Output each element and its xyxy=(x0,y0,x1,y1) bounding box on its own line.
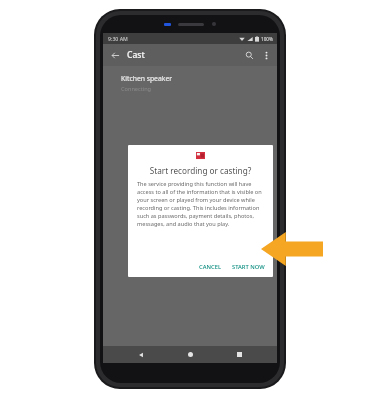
staticText: The service providing this function will… xyxy=(137,180,264,228)
staticText: 9:30 AM xyxy=(108,35,128,42)
staticText: Connecting xyxy=(121,85,152,93)
button[interactable]: START NOW xyxy=(228,260,269,274)
staticText: CANCEL xyxy=(199,263,221,271)
staticText: Kitchen speaker xyxy=(121,74,173,83)
staticText: Cast xyxy=(127,49,145,61)
staticText: START NOW xyxy=(232,263,265,271)
button[interactable]: Home xyxy=(179,347,201,362)
button[interactable]: CANCEL xyxy=(195,260,225,274)
button[interactable]: Search xyxy=(241,47,257,63)
button[interactable]: More options xyxy=(258,47,274,63)
button[interactable]: Back xyxy=(130,347,152,362)
staticText: Start recording or casting? xyxy=(137,165,264,176)
staticText: 100% xyxy=(261,36,273,42)
button[interactable]: Kitchen speaker xyxy=(103,66,277,93)
button[interactable]: Back xyxy=(107,47,123,63)
button[interactable]: Recent apps xyxy=(228,347,250,362)
